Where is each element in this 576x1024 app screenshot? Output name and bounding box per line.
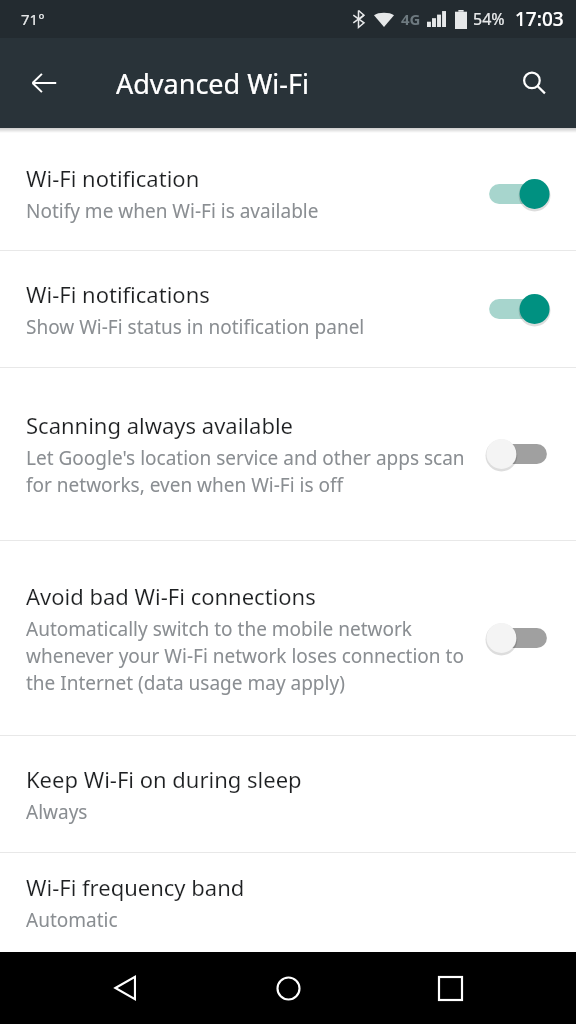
staticText: 54% [473,8,505,30]
button[interactable]: Back [90,952,162,1024]
button[interactable]: Back [18,57,70,109]
staticText: Let Google's location service and other … [26,445,466,498]
button[interactable]: Wi-Fi frequency band [0,853,576,952]
button[interactable]: Search [508,57,560,109]
staticText: Keep Wi-Fi on during sleep [26,764,302,794]
button[interactable] [480,169,556,219]
staticText: Advanced Wi-Fi [116,65,309,102]
button[interactable]: Recent apps [414,952,486,1024]
button[interactable]: Keep Wi-Fi on during sleep [0,736,576,852]
staticText: Show Wi-Fi status in notification panel [26,314,365,340]
staticText: Wi-Fi notifications [26,279,210,309]
staticText: 17:03 [515,6,564,32]
button[interactable]: Scanning always available [0,368,576,540]
button[interactable]: Home [252,952,324,1024]
staticText: Automatically switch to the mobile netwo… [26,616,466,696]
button[interactable] [480,284,556,334]
staticText: 71° [21,9,45,29]
staticText: Always [26,799,88,825]
button[interactable]: Avoid bad Wi-Fi connections [0,541,576,735]
staticText: Wi-Fi frequency band [26,872,245,902]
button[interactable] [480,429,556,479]
button[interactable]: Wi-Fi notifications [0,251,576,367]
staticText: Notify me when Wi-Fi is available [26,198,319,224]
staticText: Avoid bad Wi-Fi connections [26,581,316,611]
staticText: Wi-Fi notification [26,163,200,193]
staticText: Automatic [26,907,118,933]
button[interactable] [480,613,556,663]
staticText: Scanning always available [26,410,293,440]
button[interactable]: Wi-Fi notification [0,137,576,250]
staticText: 4G [401,9,421,29]
